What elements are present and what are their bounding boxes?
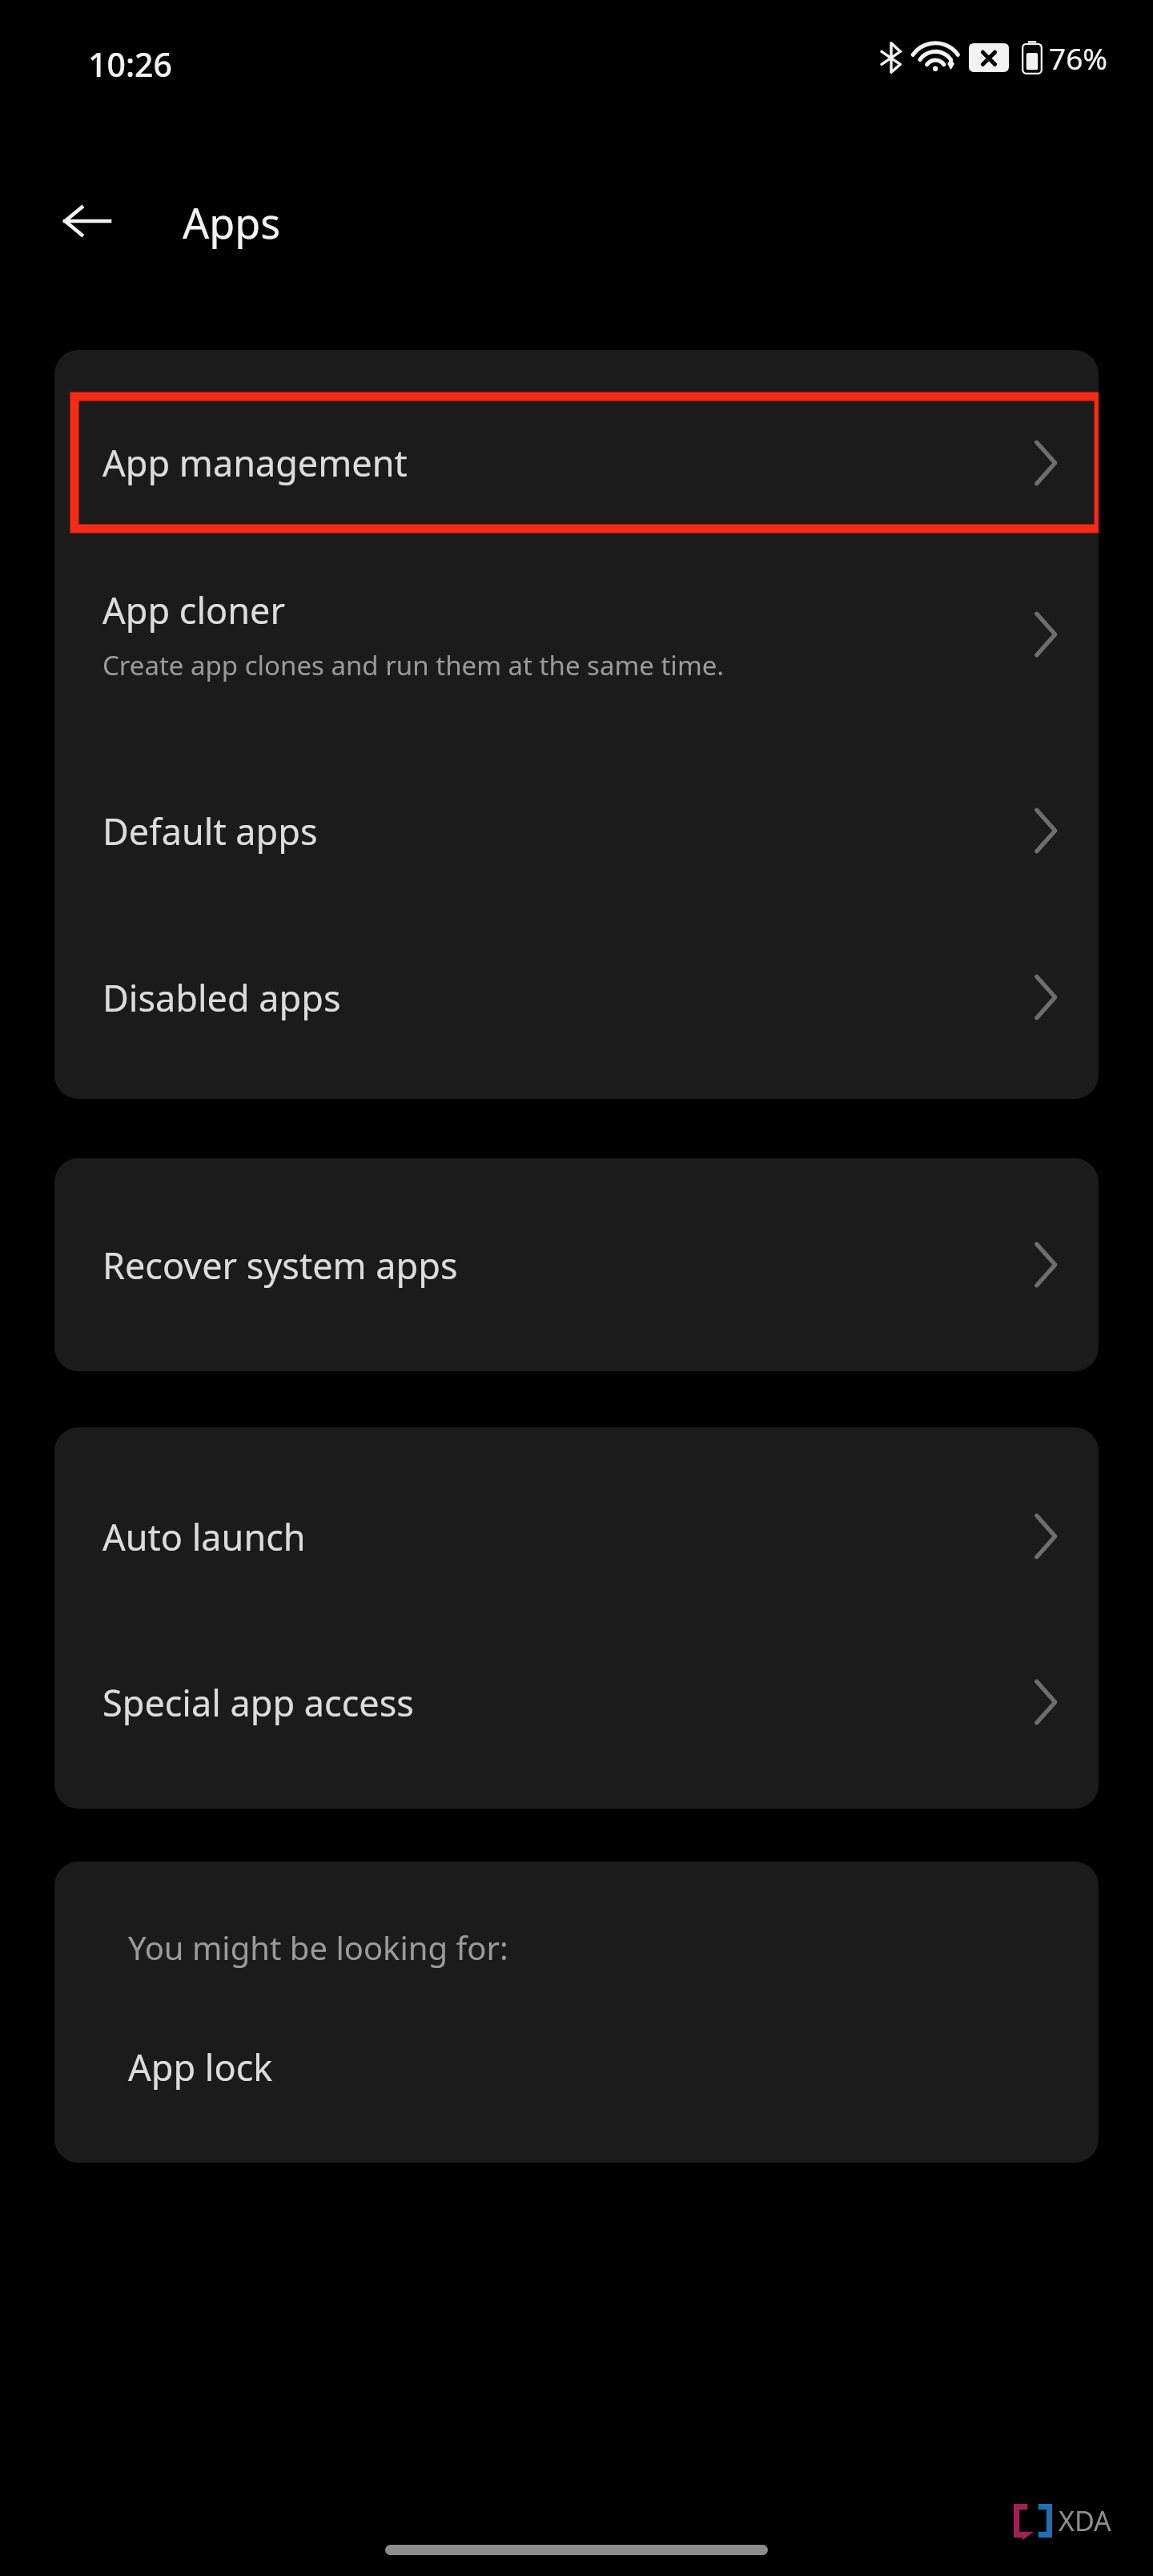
button[interactable]: App lock	[54, 2022, 1099, 2118]
staticText: Default apps	[102, 807, 318, 855]
staticText: XDA	[1059, 2502, 1111, 2539]
button[interactable]: Disabled apps	[54, 933, 1099, 1061]
staticText: 76%	[1049, 38, 1108, 78]
staticText: Recover system apps	[102, 1241, 458, 1290]
button[interactable]: Recover system apps	[54, 1201, 1099, 1329]
staticText: Create app clones and run them at the sa…	[102, 647, 725, 683]
staticText: You might be looking for:	[128, 1926, 508, 1969]
staticText: 10:26	[88, 42, 172, 87]
staticText: Auto launch	[102, 1512, 306, 1561]
button[interactable]: Back	[48, 183, 125, 260]
button[interactable]: Auto launch	[54, 1472, 1099, 1600]
button[interactable]: Default apps	[54, 767, 1099, 895]
button[interactable]: App management	[54, 396, 1099, 529]
staticText: Apps	[183, 194, 281, 251]
staticText: App lock	[128, 2043, 273, 2091]
staticText: App management	[102, 438, 408, 487]
staticText: Special app access	[102, 1678, 414, 1727]
button[interactable]: App cloner	[54, 554, 1099, 714]
staticText: App cloner	[102, 586, 286, 634]
staticText: Disabled apps	[102, 973, 341, 1022]
button[interactable]: Special app access	[54, 1638, 1099, 1766]
